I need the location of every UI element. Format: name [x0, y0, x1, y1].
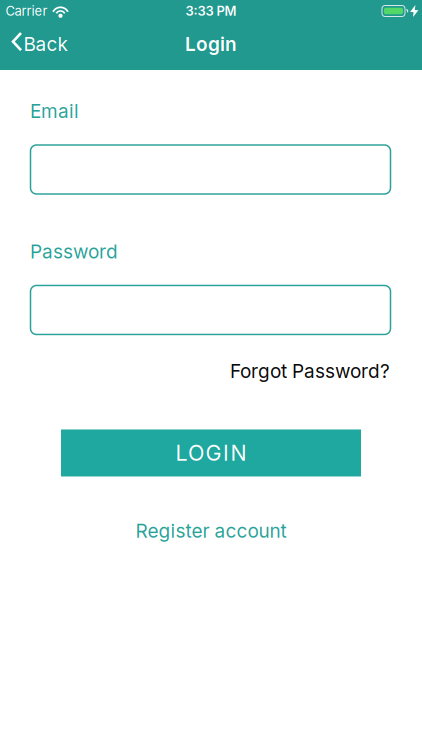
button[interactable] — [30, 145, 390, 194]
staticText: 3:33 PM — [185, 3, 236, 19]
staticText: Back — [23, 32, 67, 55]
staticText: Password — [30, 240, 118, 263]
staticText: Register account — [135, 519, 286, 542]
button[interactable]: Forgot Password? — [230, 359, 390, 382]
staticText: Email — [30, 99, 79, 122]
staticText: Carrier — [5, 3, 47, 19]
button[interactable]: Back — [0, 32, 67, 59]
button[interactable]: LOGIN — [61, 429, 361, 476]
button[interactable] — [30, 285, 390, 334]
staticText: Forgot Password? — [230, 359, 390, 382]
staticText: Login — [185, 32, 237, 55]
button[interactable]: Register account — [135, 519, 286, 542]
staticText: LOGIN — [175, 440, 246, 466]
